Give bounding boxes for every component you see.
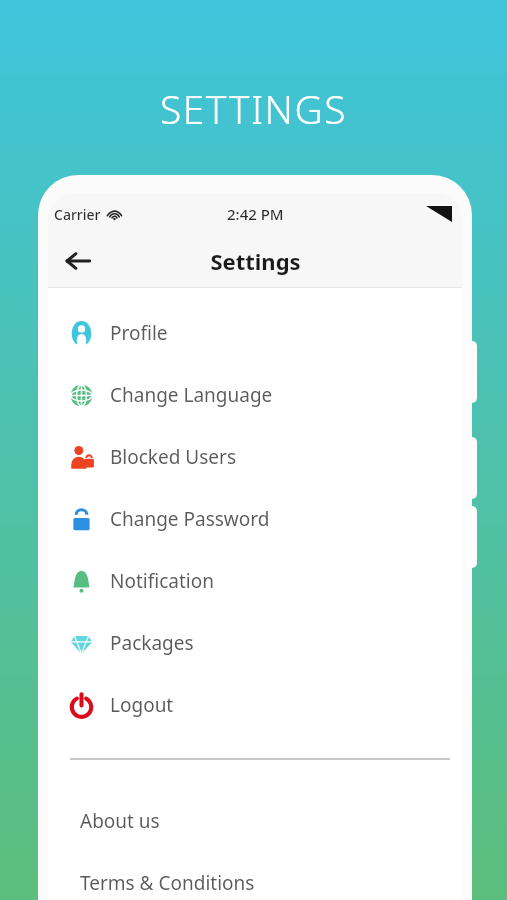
- button[interactable]: About us: [48, 790, 462, 852]
- staticText: Notification: [110, 568, 214, 594]
- staticText: Logout: [110, 692, 174, 718]
- staticText: Terms & Conditions: [80, 870, 255, 896]
- staticText: About us: [80, 808, 160, 834]
- button[interactable]: Blocked Users: [48, 426, 462, 488]
- staticText: Packages: [110, 630, 194, 656]
- staticText: 2:42 PM: [227, 204, 284, 224]
- button[interactable]: Terms & Conditions: [48, 852, 462, 900]
- button[interactable]: Logout: [48, 674, 462, 736]
- button[interactable]: Change Password: [48, 488, 462, 550]
- staticText: Carrier: [54, 205, 101, 224]
- staticText: Settings: [210, 246, 301, 276]
- staticText: Change Password: [110, 506, 270, 532]
- button[interactable]: Change Language: [48, 364, 462, 426]
- staticText: Change Language: [110, 382, 273, 408]
- staticText: Blocked Users: [110, 444, 237, 470]
- staticText: Profile: [110, 320, 168, 346]
- button[interactable]: Notification: [48, 550, 462, 612]
- staticText: SETTINGS: [160, 82, 348, 135]
- button[interactable]: Packages: [48, 612, 462, 674]
- button[interactable]: Back: [58, 241, 98, 281]
- button[interactable]: Profile: [48, 302, 462, 364]
